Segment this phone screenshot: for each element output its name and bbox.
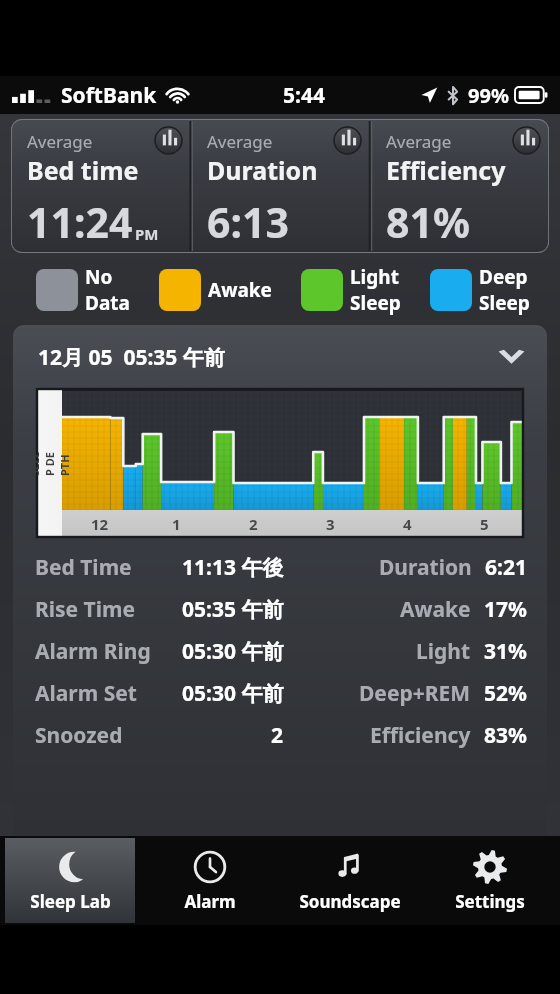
button[interactable]: Alarm Ring	[35, 630, 527, 672]
staticText: Average	[207, 130, 273, 153]
staticText: Average	[386, 130, 452, 153]
staticText: Alarm Set	[35, 679, 137, 708]
staticText: 05:30 午前	[182, 637, 284, 666]
button[interactable]: Efficiency chart	[513, 127, 540, 154]
button[interactable]: Bed Time	[35, 546, 527, 588]
button[interactable]: Awake	[159, 269, 272, 311]
staticText: 5	[480, 514, 489, 534]
staticText: Bed Time	[35, 553, 132, 582]
staticText: Sleep Lab	[30, 890, 111, 913]
staticText: 17%	[484, 595, 527, 624]
staticText: Average	[27, 130, 93, 153]
staticText: Awake	[400, 595, 471, 624]
button[interactable]: Soundscape	[280, 836, 420, 925]
button[interactable]: Average	[191, 119, 370, 253]
staticText: 3	[326, 514, 335, 534]
staticText: 2	[249, 514, 258, 534]
staticText: Data	[85, 290, 130, 316]
staticText: 81%	[386, 194, 470, 250]
button[interactable]: Rise Time	[35, 588, 527, 630]
staticText: Sleep	[350, 290, 401, 316]
staticText: Efficiency	[386, 153, 506, 187]
staticText: 11:24	[27, 194, 133, 250]
button[interactable]: Duration chart	[334, 127, 361, 154]
staticText: No	[85, 264, 113, 290]
button[interactable]: Sleep Lab	[5, 838, 135, 923]
staticText: 1	[172, 514, 181, 534]
button[interactable]: Light	[301, 264, 401, 316]
staticText: 83%	[484, 721, 527, 750]
staticText: 05:30 午前	[182, 679, 284, 708]
staticText: Soundscape	[299, 890, 401, 913]
staticText: Duration	[379, 553, 472, 582]
staticText: 05:35 午前	[182, 595, 284, 624]
staticText: Duration	[207, 153, 318, 187]
button[interactable]: Average	[11, 119, 191, 253]
button[interactable]: No	[36, 264, 130, 316]
staticText: 4	[403, 514, 412, 534]
other: Expand session	[498, 349, 525, 365]
button[interactable]: 12月 05 05:35 午前	[13, 325, 547, 389]
staticText: Alarm	[184, 890, 236, 913]
staticText: Settings	[455, 890, 525, 913]
button[interactable]: Snoozed	[35, 714, 527, 756]
staticText: Deep	[479, 264, 528, 290]
staticText: 2	[271, 721, 284, 750]
staticText: Light	[350, 264, 399, 290]
staticText: 5:44	[283, 81, 325, 110]
staticText: 12月 05 05:35 午前	[38, 343, 225, 372]
staticText: 12	[91, 514, 109, 534]
staticText: Sleep	[479, 290, 530, 316]
staticText: SLEEP DEPTH	[27, 451, 72, 476]
staticText: Awake	[208, 277, 272, 303]
button[interactable]: Bed time chart	[155, 127, 182, 154]
staticText: 99%	[468, 82, 509, 109]
staticText: SoftBank	[61, 81, 157, 110]
staticText: 6:13	[207, 194, 289, 250]
button[interactable]: Average	[370, 119, 549, 253]
staticText: Bed time	[27, 153, 139, 187]
staticText: 52%	[484, 679, 527, 708]
button[interactable]: Deep	[430, 264, 530, 316]
staticText: Deep+REM	[359, 679, 471, 708]
staticText: 31%	[484, 637, 527, 666]
button[interactable]: Alarm Set	[35, 672, 527, 714]
staticText: 6:21	[485, 553, 527, 582]
staticText: Rise Time	[35, 595, 136, 624]
staticText: Efficiency	[370, 721, 471, 750]
staticText: Alarm Ring	[35, 637, 151, 666]
staticText: Light	[416, 637, 471, 666]
staticText: Snoozed	[35, 721, 123, 750]
staticText: PM	[135, 224, 159, 244]
button[interactable]: Settings	[420, 836, 560, 925]
button[interactable]: Alarm	[140, 836, 280, 925]
staticText: 11:13 午後	[182, 553, 284, 582]
